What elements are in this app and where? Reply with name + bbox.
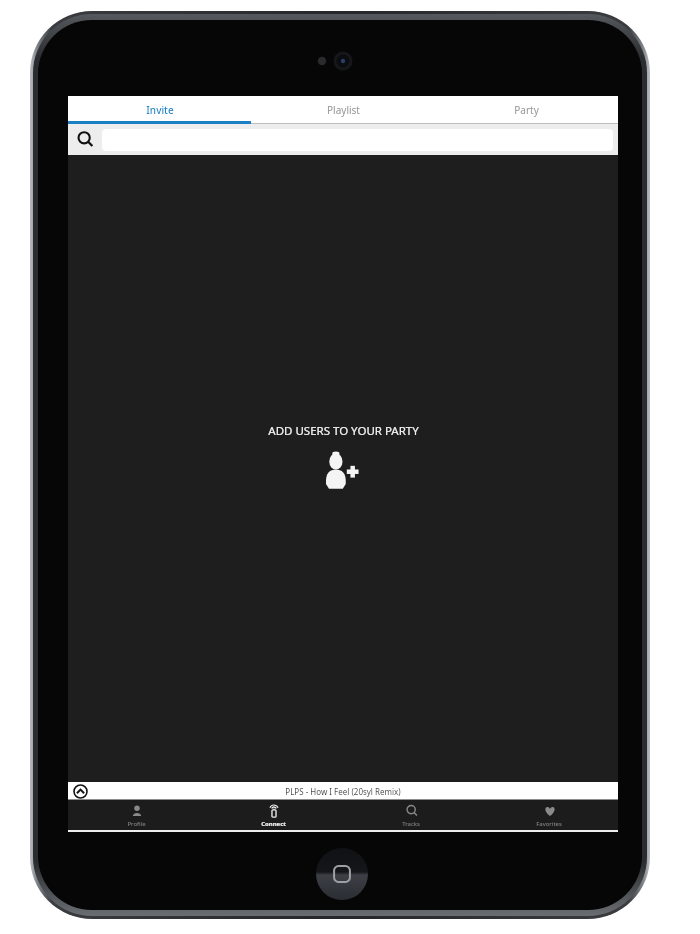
button[interactable]: Expand player — [71, 782, 89, 800]
staticText: PLPS - How I Feel (20syl Remix) — [285, 786, 401, 797]
button[interactable]: Home — [316, 848, 368, 900]
button[interactable]: Invite — [68, 96, 252, 124]
button[interactable]: Connect — [205, 800, 342, 830]
button[interactable]: Party — [435, 96, 618, 124]
button[interactable]: Tracks — [342, 800, 480, 830]
button[interactable]: PLPS - How I Feel (20syl Remix) — [68, 782, 618, 800]
button[interactable]: Search — [68, 124, 102, 155]
staticText: Invite — [146, 103, 174, 117]
button[interactable]: Playlist — [252, 96, 435, 124]
button[interactable]: Profile — [68, 800, 205, 830]
staticText: Profile — [127, 820, 146, 828]
staticText: Playlist — [327, 103, 360, 117]
staticText: Tracks — [402, 820, 420, 828]
staticText: Party — [514, 103, 539, 117]
staticText: Favorites — [536, 820, 562, 828]
staticText: ADD USERS TO YOUR PARTY — [268, 423, 419, 439]
staticText: Connect — [261, 820, 286, 828]
button[interactable]: Favorites — [480, 800, 618, 830]
button[interactable]: Add users — [313, 451, 375, 491]
